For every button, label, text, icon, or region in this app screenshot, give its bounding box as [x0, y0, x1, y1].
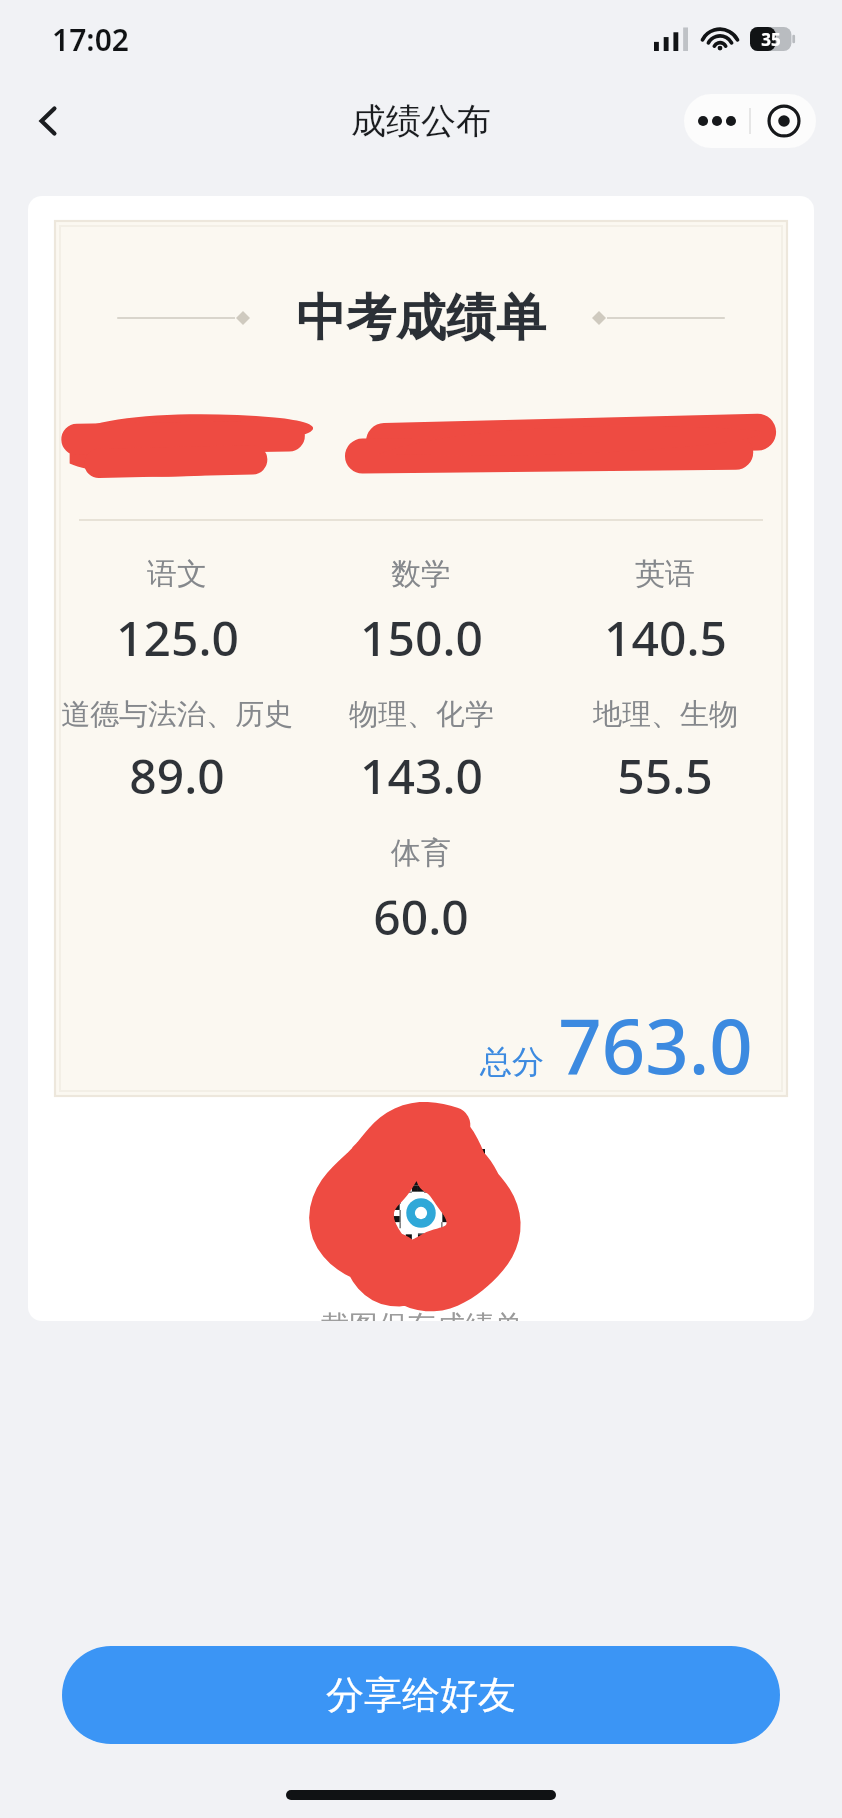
staticText: 分享给好友	[326, 1671, 516, 1719]
staticText: 物理、化学	[349, 696, 494, 733]
staticText: 17:02	[52, 19, 129, 60]
staticText: 截图保存成绩单	[320, 1308, 523, 1321]
staticText: 语文	[147, 555, 207, 593]
staticText: 150.0	[360, 605, 483, 670]
button[interactable]: Back	[18, 90, 80, 152]
staticText: 英语	[635, 555, 695, 593]
staticText: 140.5	[604, 605, 727, 670]
staticText: 763.0	[558, 993, 753, 1096]
staticText: 总分	[480, 1042, 544, 1082]
staticText: 55.5	[617, 743, 713, 808]
staticText: 成绩公布	[351, 99, 491, 143]
staticText: 35	[761, 28, 781, 51]
button[interactable]: Close	[751, 94, 816, 148]
staticText: 60.0	[373, 884, 469, 949]
staticText: 体育	[391, 834, 451, 872]
staticText: 125.0	[116, 605, 239, 670]
staticText: 89.0	[129, 743, 225, 808]
staticText: 中考成绩单	[296, 287, 546, 350]
staticText: 地理、生物	[593, 696, 738, 733]
button[interactable]: More	[684, 94, 749, 148]
staticText: 道德与法治、历史	[61, 696, 293, 733]
staticText: 143.0	[360, 743, 483, 808]
staticText: 数学	[391, 555, 451, 593]
button[interactable]: 分享给好友	[62, 1646, 780, 1744]
